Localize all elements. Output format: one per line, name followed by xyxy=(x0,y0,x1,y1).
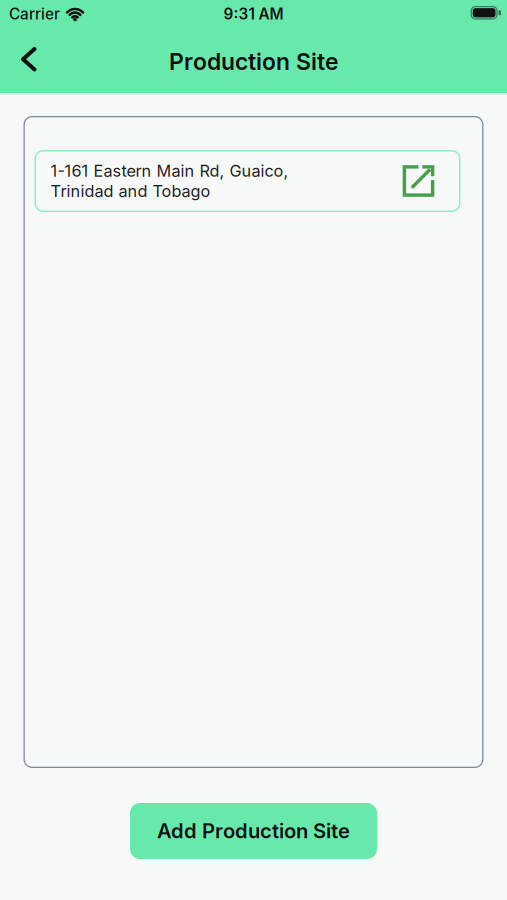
staticText: Trinidad and Tobago xyxy=(50,181,210,201)
button[interactable]: 1-161 Eastern Main Rd, Guaico, xyxy=(34,150,460,212)
button[interactable]: Back xyxy=(0,30,48,93)
button[interactable]: Add Production Site xyxy=(130,803,377,859)
staticText: Carrier xyxy=(9,5,60,23)
staticText: 1-161 Eastern Main Rd, Guaico, xyxy=(50,161,288,181)
staticText: 9:31 AM xyxy=(223,5,283,23)
staticText: Add Production Site xyxy=(157,819,350,843)
staticText: Production Site xyxy=(169,47,338,75)
